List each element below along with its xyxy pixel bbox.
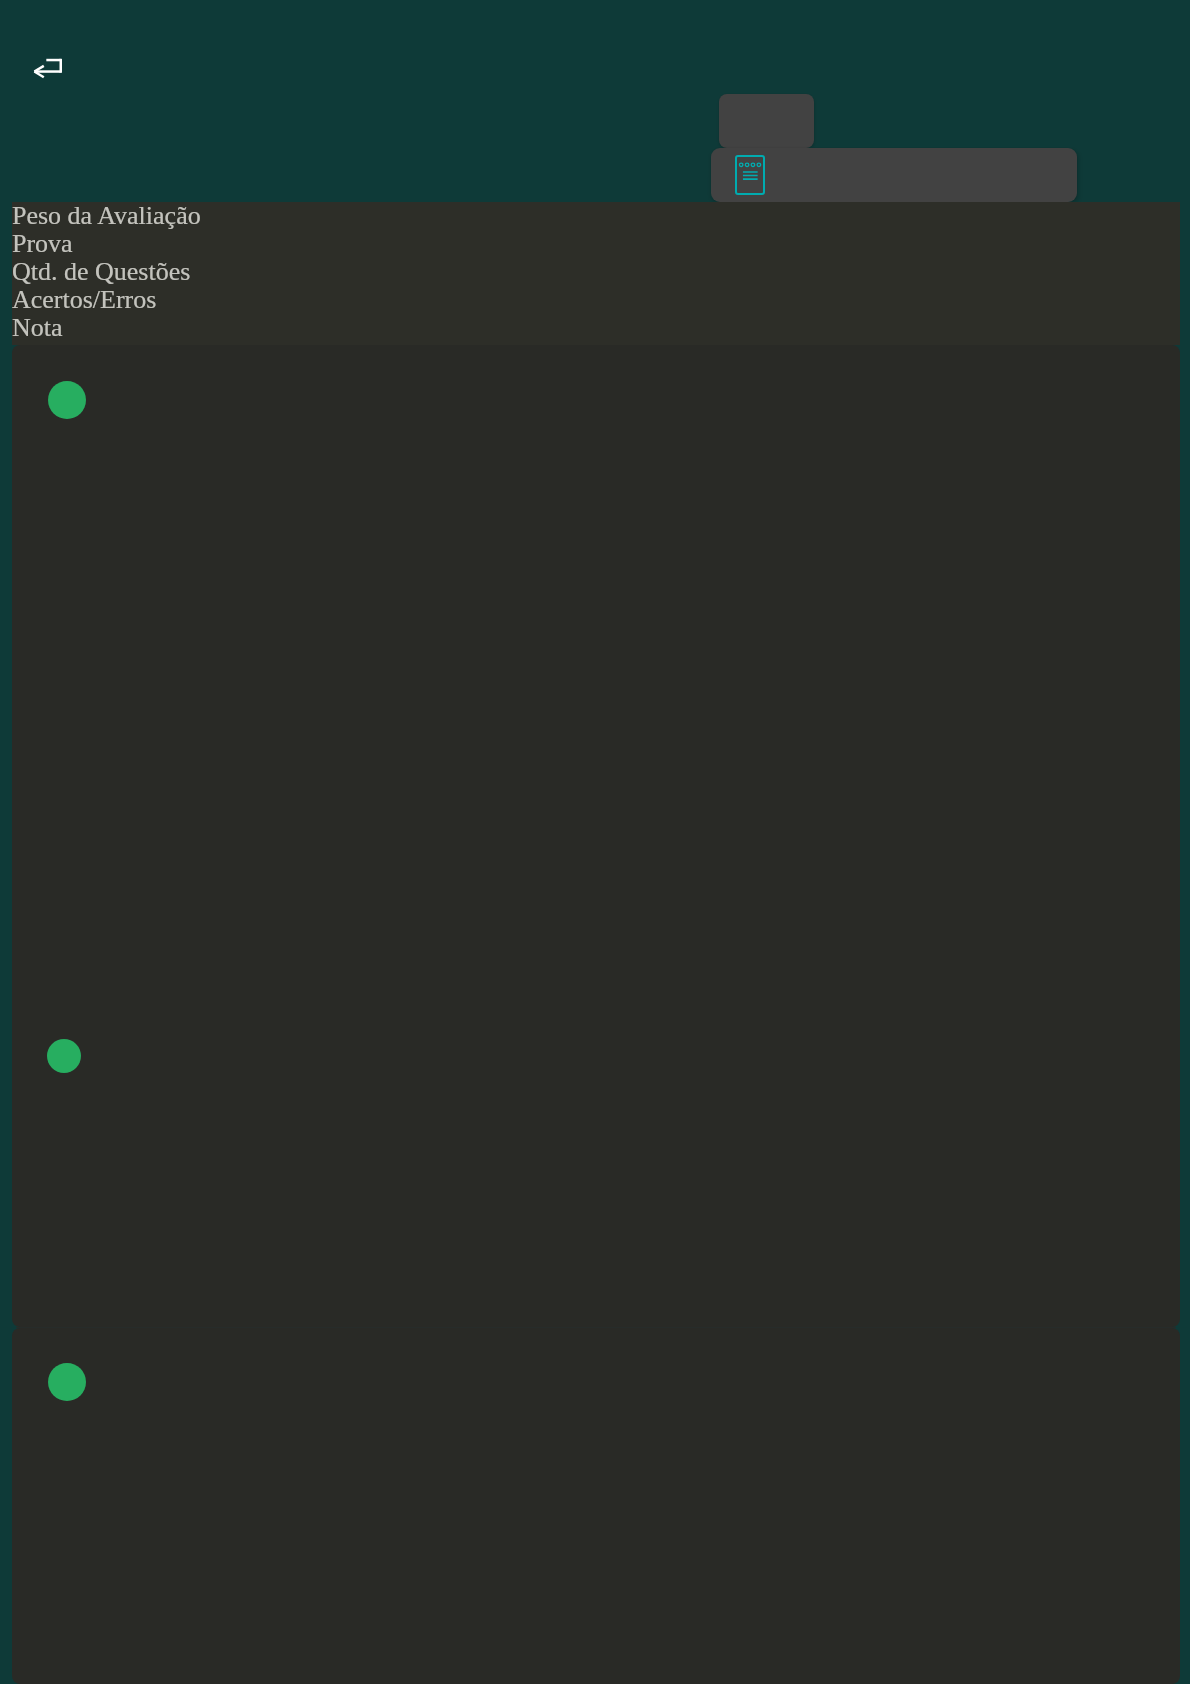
button[interactable] (12, 345, 1180, 1327)
button[interactable]: Back (14, 34, 82, 102)
staticText: Qtd. de Questões (12, 258, 191, 286)
staticText: Prova (12, 230, 73, 258)
staticText: Acertos/Erros (12, 286, 157, 314)
button[interactable]: Notes (711, 148, 1077, 202)
button[interactable] (12, 1328, 1180, 1684)
staticText: Nota (12, 314, 63, 342)
staticText: Peso da Avaliação (12, 202, 201, 230)
